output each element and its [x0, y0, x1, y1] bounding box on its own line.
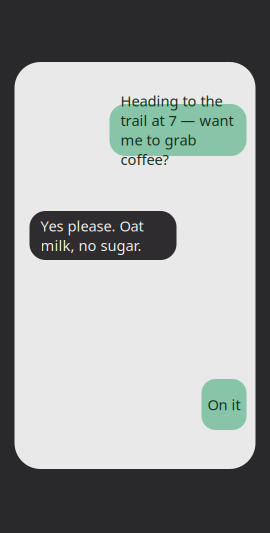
staticText: On it	[207, 395, 240, 414]
staticText: Heading to the trail at 7 — want me to g…	[120, 91, 233, 169]
staticText: Yes please. Oat milk, no sugar.	[40, 216, 143, 255]
